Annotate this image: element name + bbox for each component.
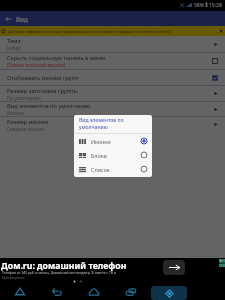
staticText: Дом.ru: домашний телефон (1, 260, 127, 272)
staticText: Иконки (7, 110, 25, 116)
button[interactable]: Undo (41, 284, 73, 300)
staticText: Скрыть социальную панель в меню (7, 54, 106, 62)
staticText: Длинное нажатие на значке приложения или… (8, 29, 219, 34)
button[interactable]: Список (74, 162, 152, 176)
button[interactable]: Home (78, 284, 110, 300)
staticText: [Только в полной версии] (7, 62, 66, 68)
staticText: Список (91, 166, 140, 173)
staticText: По умолчанию (7, 95, 41, 101)
staticText: Мультиэкранное (2, 276, 25, 280)
button[interactable]: Вид элементов по умолчанию (0, 102, 225, 117)
button[interactable]: Размер заголовка группы (0, 86, 225, 102)
staticText: Иконки (91, 138, 140, 145)
staticText: Вид элементов по умолчанию (7, 102, 91, 110)
button[interactable]: Back (4, 284, 36, 300)
staticText: 15:28 (209, 2, 222, 9)
staticText: Отображать иконки групп (7, 74, 79, 82)
button[interactable]: Open ad (163, 260, 185, 275)
button[interactable]: Тема (0, 36, 225, 53)
staticText: Размер заголовка группы (7, 87, 78, 95)
button[interactable]: Скрыть социальную панель в меню (0, 53, 225, 70)
staticText: Вид элементов по умолчанию (79, 117, 124, 131)
staticText: Indigo (7, 45, 22, 51)
staticText: Размер иконок (7, 118, 49, 126)
staticText: Вид (16, 15, 28, 23)
button[interactable]: Отображать иконки групп (0, 70, 225, 86)
staticText: Блоки (91, 152, 140, 159)
button[interactable]: Multi window (151, 286, 187, 300)
button[interactable]: Иконки (74, 134, 152, 148)
button[interactable]: Recents (115, 284, 147, 300)
button[interactable]: Размер иконок (0, 117, 225, 132)
staticText: Телефон от 340 руб. в месяц. Домашний ме… (2, 270, 117, 275)
button[interactable]: Блоки (74, 148, 152, 162)
staticText: Средние иконки (7, 126, 45, 132)
staticText: Тема (7, 37, 21, 45)
button[interactable]: Back (0, 11, 16, 26)
staticText: 58% (194, 2, 204, 9)
